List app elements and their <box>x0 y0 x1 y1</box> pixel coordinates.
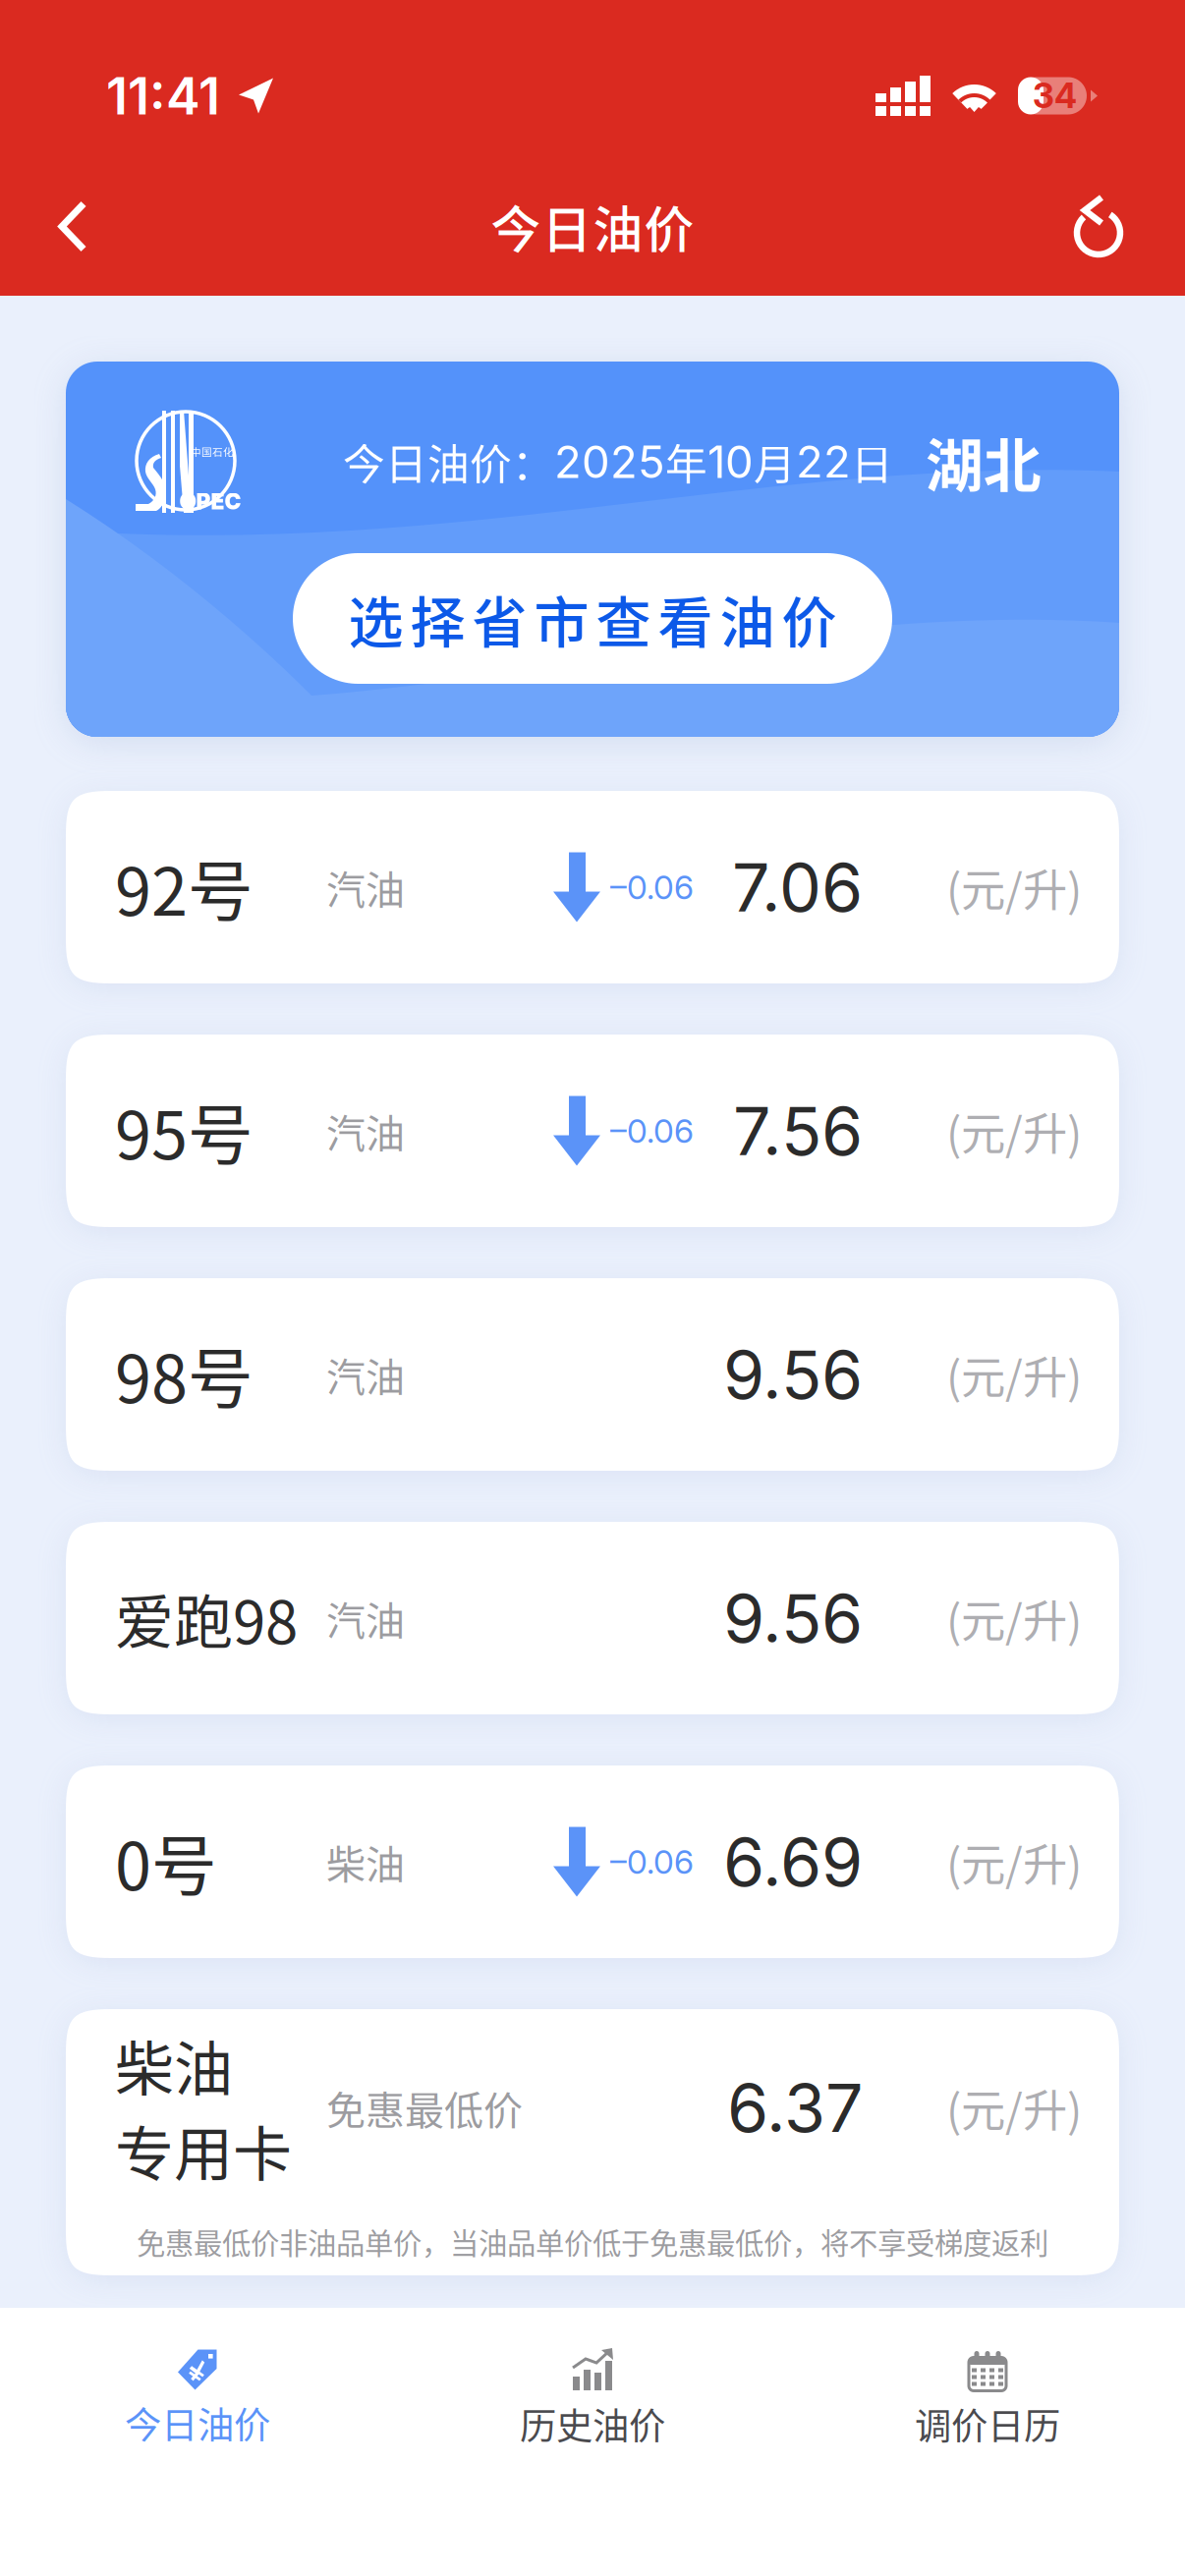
staticText: 9.56 <box>723 1578 863 1659</box>
staticText: 汽油 <box>326 1590 405 1646</box>
staticText: 7.56 <box>733 1090 863 1171</box>
button[interactable]: 返回 <box>0 171 133 281</box>
staticText: 年 <box>665 431 707 492</box>
staticText: (元/升) <box>946 1099 1082 1163</box>
staticText: –0.06 <box>610 1842 694 1882</box>
staticText: (元/升) <box>946 2075 1082 2140</box>
button[interactable]: 98号 <box>66 1278 1119 1471</box>
button[interactable]: 刷新 <box>1030 172 1185 281</box>
staticText: 11:41 <box>106 65 220 127</box>
staticText: 10 <box>707 435 754 489</box>
staticText: 中国石化 <box>191 444 234 459</box>
staticText: (元/升) <box>946 855 1082 919</box>
button[interactable]: 0号 <box>66 1765 1119 1958</box>
button[interactable]: 历史油价 <box>395 2308 790 2576</box>
staticText: 95号 <box>115 1083 254 1178</box>
staticText: 爱跑98 <box>115 1575 298 1661</box>
staticText: 7.06 <box>732 847 863 928</box>
staticText: 月 <box>754 431 796 492</box>
button[interactable]: 柴油 专用卡 <box>66 2009 1119 2275</box>
staticText: 92号 <box>115 840 254 935</box>
staticText: 6.37 <box>727 2067 863 2148</box>
staticText: 汽油 <box>326 1102 405 1159</box>
staticText: 6.69 <box>723 1821 863 1902</box>
staticText: 柴油 <box>326 1833 405 1890</box>
staticText: –0.06 <box>610 867 694 907</box>
staticText: 9.56 <box>723 1334 863 1415</box>
staticText: 历史油价 <box>520 2397 665 2450</box>
staticText: 柴油 专用卡 <box>115 2022 292 2193</box>
staticText: 免惠最低价非油品单价，当油品单价低于免惠最低价，将不享受梯度返利 <box>137 2220 1048 2262</box>
staticText: 今日油价 <box>491 190 694 263</box>
staticText: 22 <box>796 435 851 489</box>
staticText: 湖北 <box>926 420 1042 504</box>
staticText: 汽油 <box>326 1346 405 1403</box>
staticText: 选择省市查看油价 <box>348 579 837 658</box>
staticText: 2025 <box>554 435 665 489</box>
staticText: (元/升) <box>946 1830 1082 1894</box>
staticText: (元/升) <box>946 1342 1082 1407</box>
button[interactable]: 选择省市查看油价 <box>293 553 892 684</box>
button[interactable]: 92号 <box>66 791 1119 983</box>
staticText: 汽油 <box>326 859 405 916</box>
button[interactable]: 今日油价 <box>0 2308 395 2576</box>
staticText: (元/升) <box>946 1586 1082 1650</box>
staticText: 免惠最低价 <box>326 2079 523 2136</box>
staticText: 0号 <box>115 1814 217 1909</box>
staticText: 34 <box>1033 75 1077 116</box>
button[interactable]: 调价日历 <box>790 2308 1185 2576</box>
button[interactable]: 爱跑98 <box>66 1522 1119 1714</box>
staticText: –0.06 <box>610 1111 694 1151</box>
staticText: 98号 <box>115 1327 254 1422</box>
button[interactable]: 95号 <box>66 1035 1119 1227</box>
staticText: 今日油价： <box>343 431 554 492</box>
staticText: 调价日历 <box>915 2397 1060 2450</box>
staticText: 今日油价 <box>125 2396 270 2449</box>
staticText: OPEC <box>179 488 241 515</box>
staticText: 日 <box>851 431 893 492</box>
